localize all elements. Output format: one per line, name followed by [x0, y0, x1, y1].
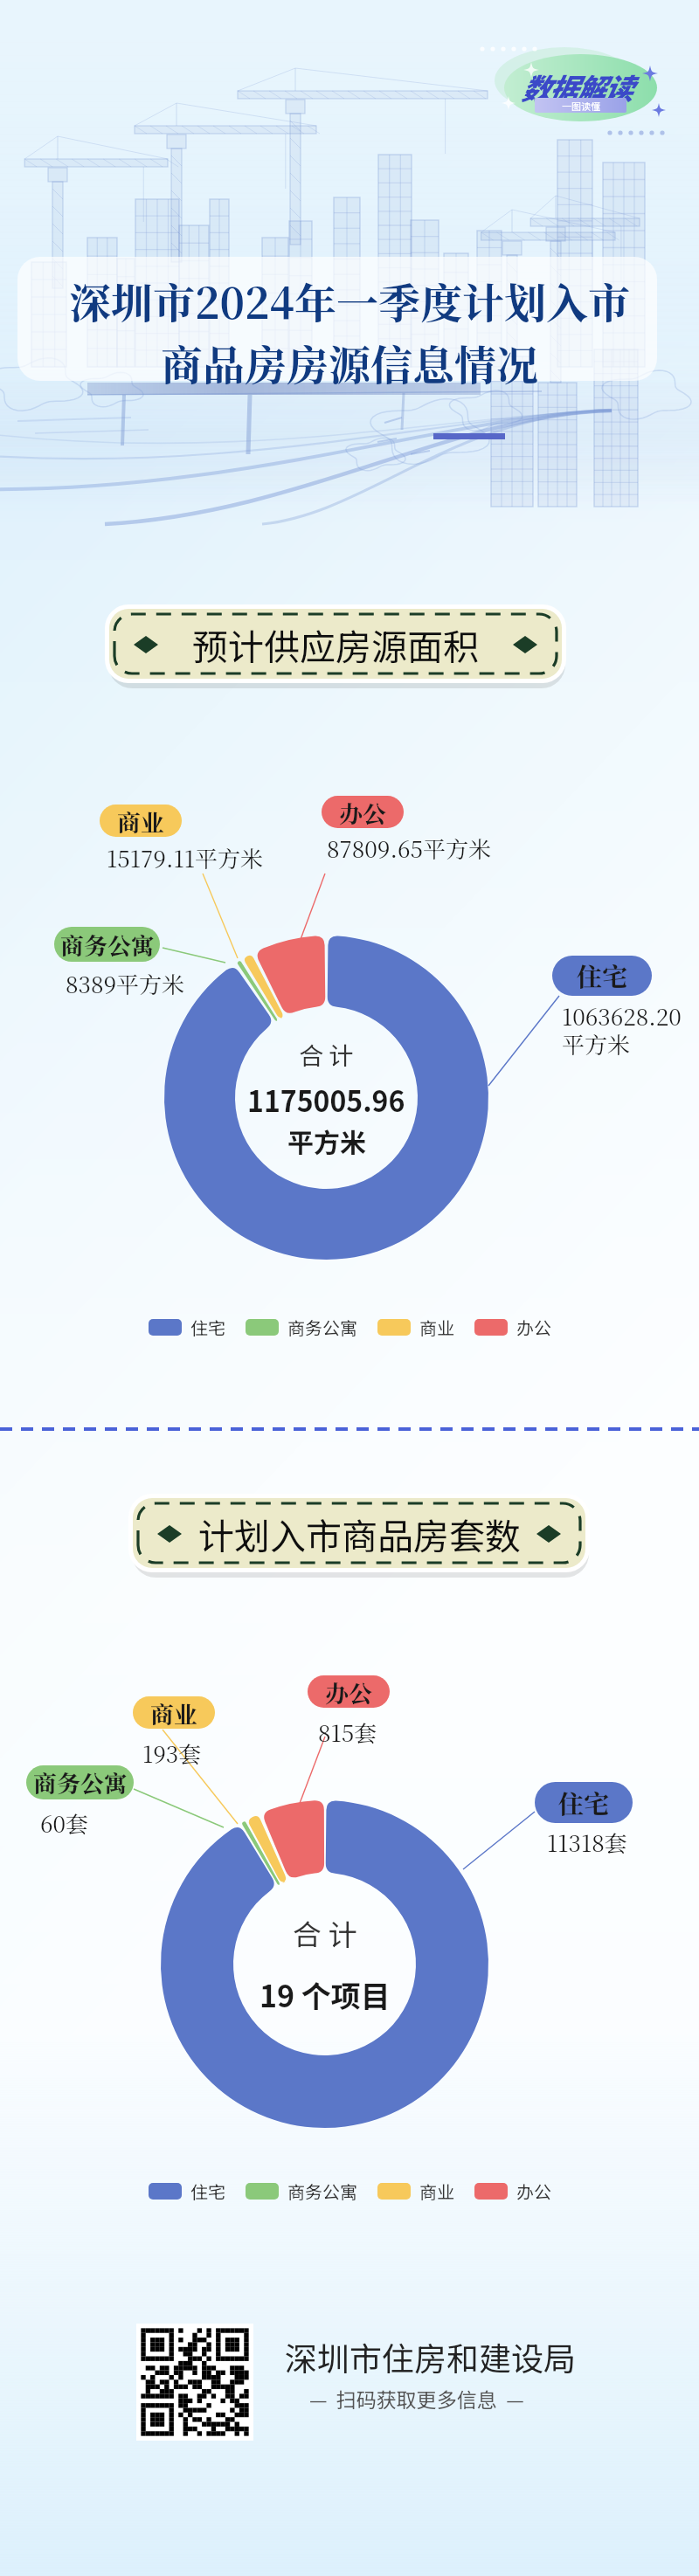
- staticText: 计划入市商品房套数: [198, 1508, 521, 1559]
- button[interactable]: 住宅: [149, 1315, 225, 1340]
- staticText: 住宅: [577, 957, 628, 994]
- staticText: 合 计: [293, 1912, 357, 1954]
- button[interactable]: 扫码: [136, 2324, 253, 2441]
- staticText: 合 计: [299, 1037, 354, 1073]
- button[interactable]: 办公: [474, 1315, 551, 1340]
- staticText: 商务公寓: [60, 928, 155, 962]
- staticText: 办公: [516, 2179, 551, 2204]
- button[interactable]: 商业: [100, 805, 182, 837]
- staticText: 商业: [419, 1315, 454, 1340]
- staticText: 19 个项目: [260, 1973, 391, 2016]
- staticText: 60套: [40, 1806, 88, 1839]
- staticText: 商务公寓: [287, 1315, 357, 1340]
- staticText: 1175005.96: [247, 1080, 405, 1120]
- button[interactable]: 商业: [377, 1315, 454, 1340]
- staticText: 一图读懂: [562, 99, 600, 113]
- staticText: 预计供应房源面积: [192, 618, 479, 670]
- button[interactable]: 预计供应房源面积: [109, 609, 562, 679]
- button[interactable]: 商务公寓: [246, 1315, 357, 1340]
- staticText: 办公: [339, 796, 386, 828]
- staticText: 1063628.20 平方米: [562, 999, 682, 1060]
- staticText: 数据解读: [522, 66, 632, 108]
- staticText: 住宅: [190, 1315, 225, 1340]
- staticText: 815套: [318, 1716, 377, 1748]
- staticText: 15179.11平方米: [107, 841, 263, 874]
- button[interactable]: 办公: [322, 796, 404, 828]
- button[interactable]: 计划入市商品房套数: [133, 1498, 585, 1568]
- staticText: 商品房房源信息情况: [161, 333, 539, 393]
- button[interactable]: 住宅: [149, 2179, 225, 2204]
- staticText: 商务公寓: [33, 1765, 128, 1799]
- button[interactable]: 住宅: [552, 956, 652, 996]
- staticText: 住宅: [190, 2179, 225, 2204]
- staticText: 办公: [325, 1675, 372, 1708]
- button[interactable]: 商业: [377, 2179, 454, 2204]
- staticText: 193套: [142, 1737, 202, 1769]
- button[interactable]: 办公: [474, 2179, 551, 2204]
- staticText: 办公: [516, 1315, 551, 1340]
- button[interactable]: 商务公寓: [246, 2179, 357, 2204]
- button[interactable]: 商务公寓: [54, 927, 160, 962]
- button[interactable]: 商业: [133, 1696, 215, 1729]
- staticText: 商业: [117, 805, 164, 837]
- staticText: 住宅: [558, 1785, 610, 1821]
- staticText: 8389平方米: [66, 967, 185, 999]
- staticText: 87809.65平方米: [327, 832, 491, 864]
- staticText: 商务公寓: [287, 2179, 357, 2204]
- staticText: 商业: [150, 1696, 197, 1729]
- staticText: 11318套: [547, 1826, 627, 1858]
- staticText: 商业: [419, 2179, 454, 2204]
- button[interactable]: 数据解读: [522, 66, 632, 108]
- staticText: — 扫码获取更多信息 —: [309, 2384, 524, 2413]
- staticText: 深圳市住房和建设局: [285, 2333, 576, 2380]
- button[interactable]: 办公: [308, 1675, 390, 1708]
- staticText: 平方米: [287, 1122, 366, 1159]
- button[interactable]: 商务公寓: [26, 1765, 134, 1799]
- button[interactable]: 住宅: [535, 1782, 633, 1823]
- staticText: 深圳市2024年一季度计划入市: [69, 271, 630, 331]
